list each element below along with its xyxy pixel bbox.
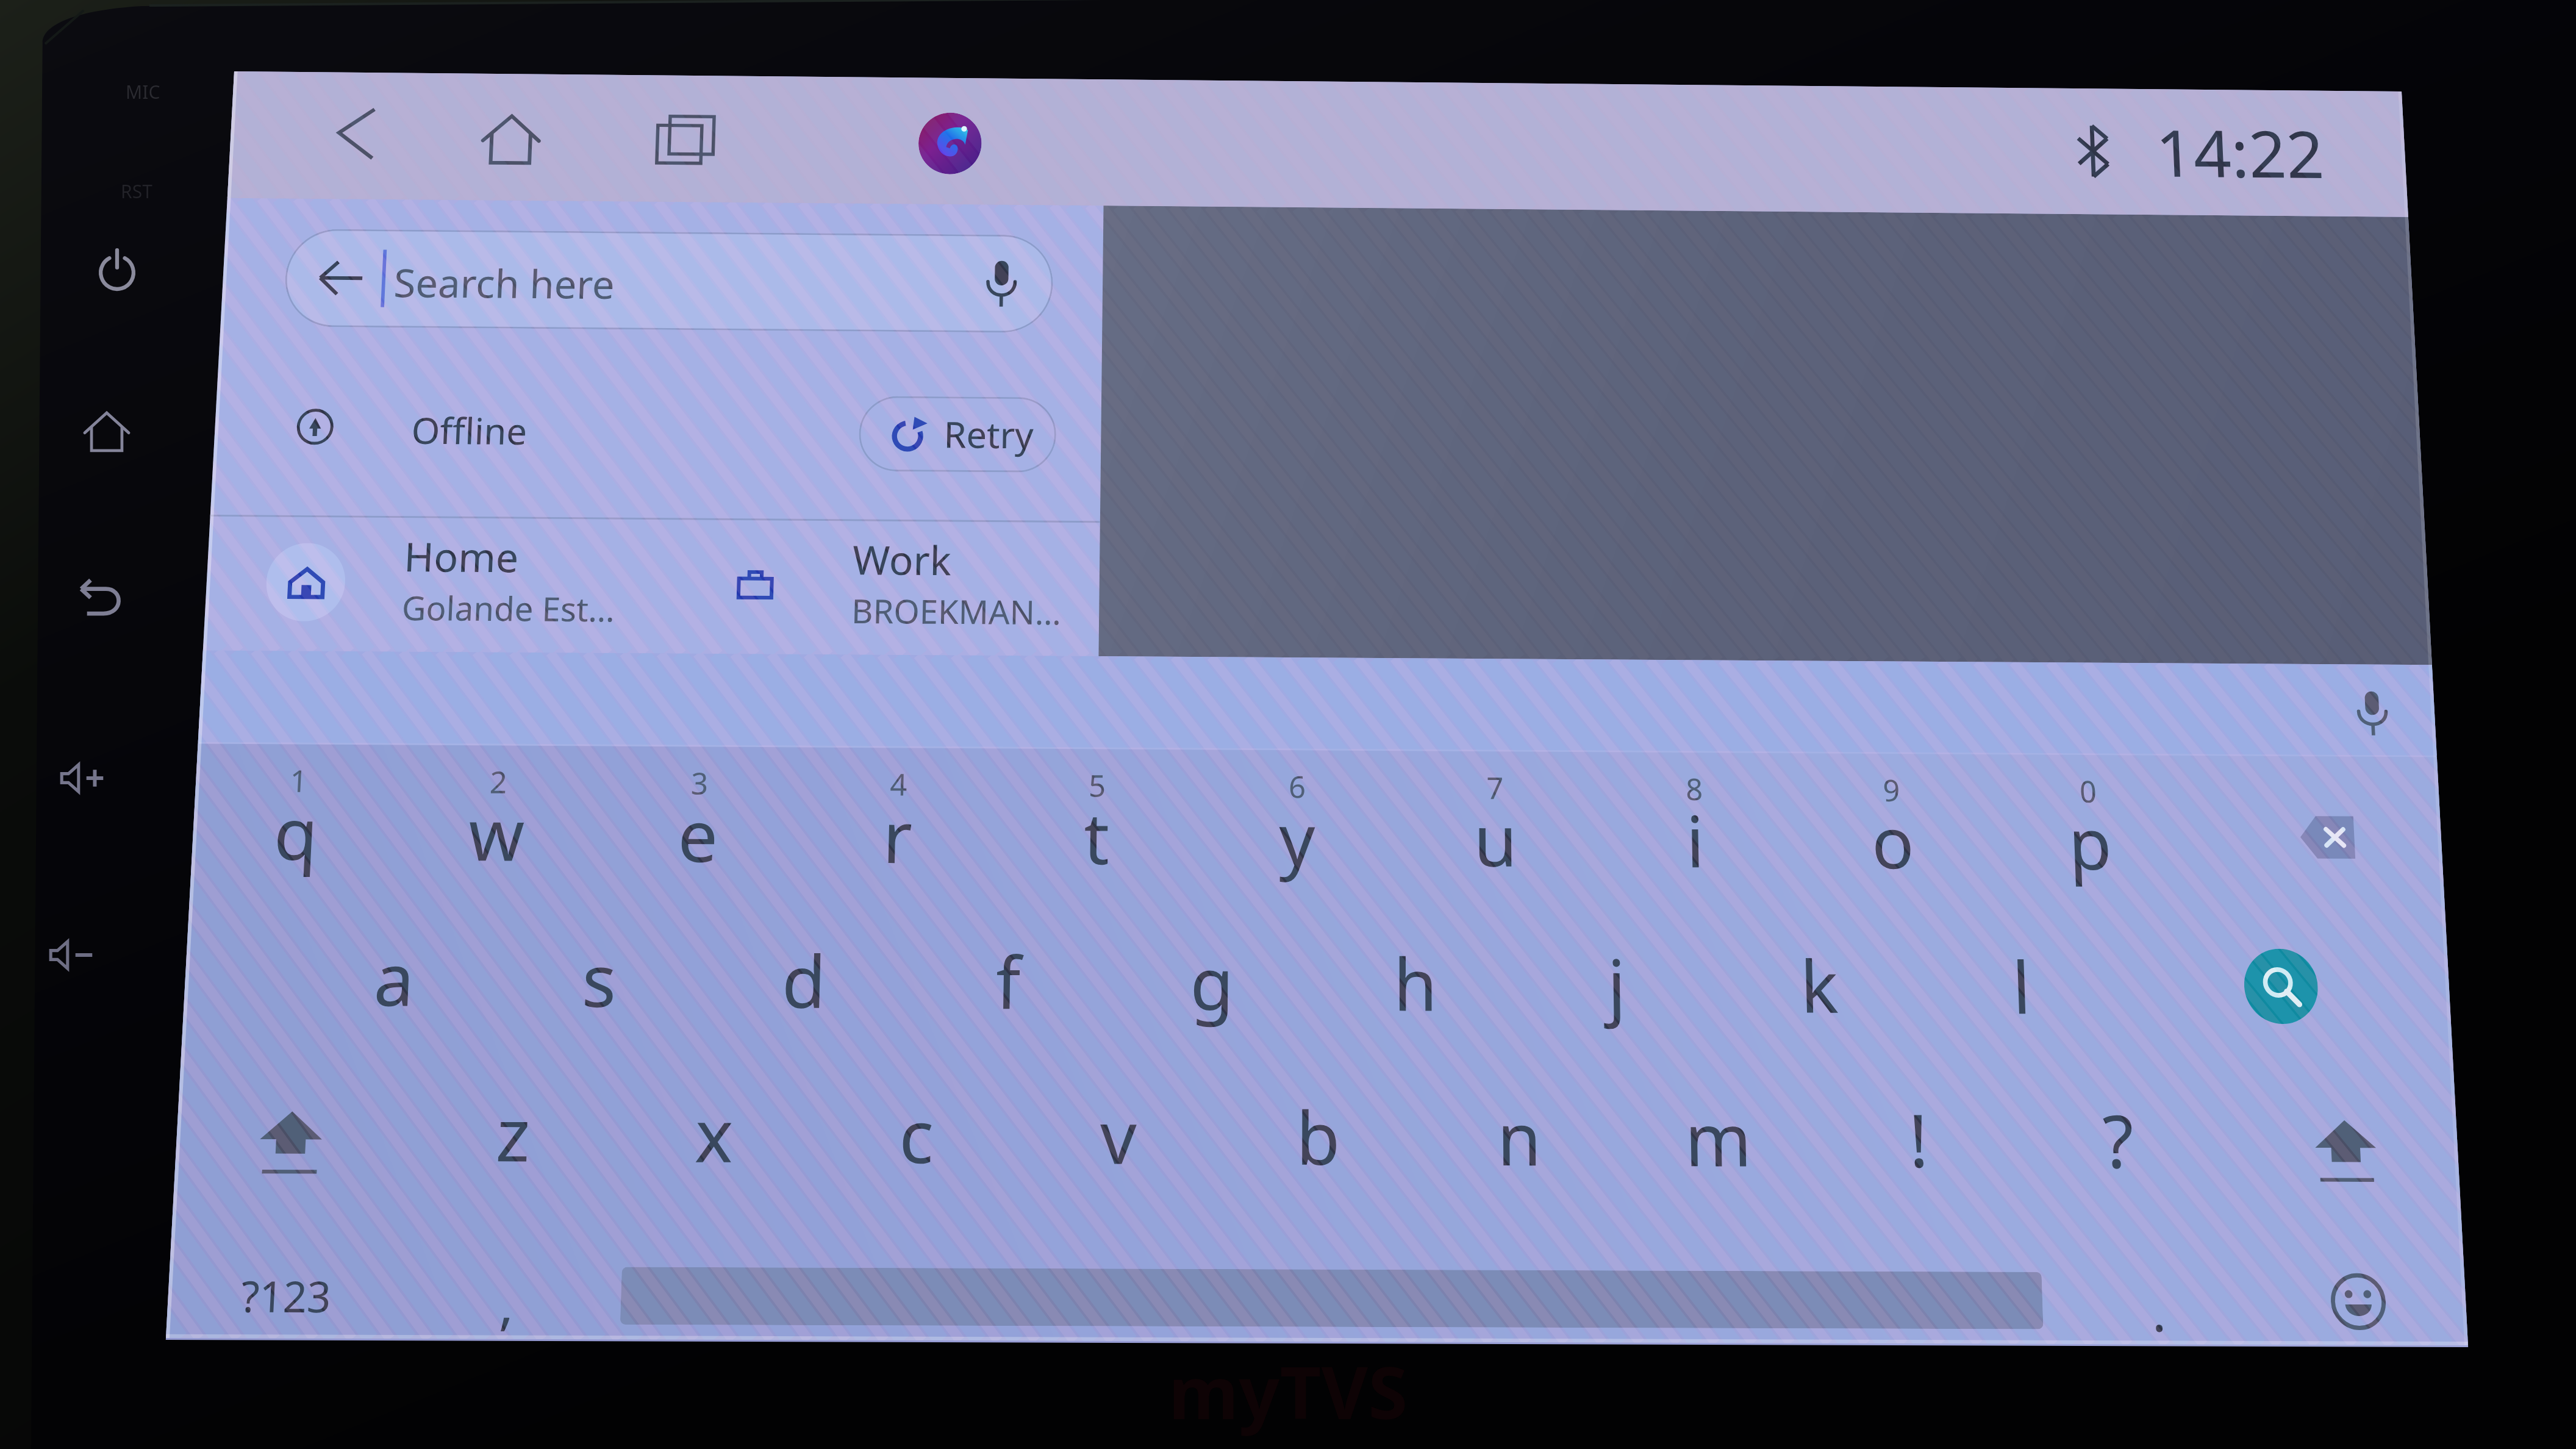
staticText: 1 [4,245,66,259]
button[interactable]: g [317,293,387,345]
button[interactable]: Shift [4,345,73,396]
button[interactable]: 0 [623,242,692,293]
staticText: g [279,302,425,335]
button[interactable]: k [527,293,597,345]
button[interactable]: v [286,345,355,396]
staticText: i [446,253,593,286]
button[interactable]: Work [157,160,312,207]
button[interactable]: l [597,293,667,345]
button[interactable]: ? [629,345,698,396]
button[interactable]: 8 [485,242,554,293]
staticText: c [178,354,324,387]
staticText: q [0,253,109,286]
button[interactable]: m [492,345,560,396]
staticText: 6 [350,245,412,259]
staticText: u [377,253,523,286]
staticText: 5 [281,245,343,259]
button[interactable]: j [457,293,527,345]
staticText: 8 [488,245,551,259]
button[interactable]: Retry [226,116,296,143]
staticText: x [109,354,256,387]
staticText: n [384,354,531,387]
button[interactable]: h [387,293,457,345]
staticText: BROEKMAN… [225,184,299,200]
staticText: ? [590,354,737,387]
button[interactable]: Voice search [263,63,288,87]
staticText: w [31,253,177,286]
staticText: RST [121,179,152,204]
button[interactable]: Home [0,160,157,207]
staticText: , [59,415,169,440]
button[interactable]: 1 [1,242,70,293]
staticText: e [101,253,247,286]
button[interactable]: Space [152,396,635,440]
staticText: t [238,253,385,286]
staticText: v [247,354,393,387]
staticText: Work [225,164,260,183]
staticText: 0 [626,245,689,259]
button[interactable]: 7 [415,242,484,293]
button[interactable]: Search [684,293,754,345]
button[interactable]: Navigate up [22,57,294,93]
button[interactable]: Back [26,11,51,35]
staticText: MIC [126,79,160,104]
staticText: a [0,302,145,335]
button[interactable]: n [423,345,492,396]
staticText: d [138,302,285,335]
staticText: b [315,354,462,387]
staticText: l [559,302,705,335]
button[interactable]: c [217,345,286,396]
staticText: Golande Est… [68,184,143,200]
staticText: f [209,302,355,335]
staticText: 2 [73,245,135,259]
staticText: 4 [212,245,274,259]
staticText: m [453,354,599,387]
staticText: k [488,302,635,335]
button[interactable]: ?123 [5,396,74,440]
button[interactable]: 5 [277,242,346,293]
staticText: p [584,253,731,286]
button[interactable]: 9 [554,242,623,293]
staticText: 7 [419,245,481,259]
button[interactable]: 2 [70,242,138,293]
button[interactable]: Navigate up [29,63,54,87]
staticText: r [170,253,316,286]
button[interactable]: Shift [707,345,777,396]
staticText: h [349,302,495,335]
staticText: o [515,253,662,286]
button[interactable]: 4 [208,242,277,293]
button[interactable]: , [80,396,148,440]
staticText: 9 [557,245,620,259]
staticText: ?123 [0,415,82,434]
staticText: myTVS [1168,1342,1408,1440]
staticText: . [620,415,730,440]
button[interactable]: Voice input [753,216,764,232]
button[interactable]: ! [560,345,629,396]
staticText: j [418,302,565,335]
staticText: y [308,253,454,286]
button[interactable]: Backspace [692,242,781,293]
button[interactable]: f [247,293,317,345]
button[interactable]: Emoji [715,396,776,440]
button[interactable]: b [354,345,423,396]
button[interactable]: . [642,396,707,440]
button[interactable]: d [177,293,247,345]
staticText: ! [521,354,668,387]
button[interactable]: 6 [346,242,415,293]
